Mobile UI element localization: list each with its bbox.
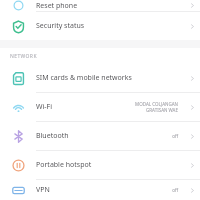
button[interactable]: Bluetooth — [0, 122, 200, 150]
staticText: MODAL COLJANGAN GRATISAN WAE — [135, 101, 178, 113]
staticText: off — [172, 133, 178, 139]
button[interactable]: Reset phone — [0, 0, 200, 11]
staticText: Wi-Fi — [36, 102, 53, 112]
button[interactable]: Wi-Fi — [0, 93, 200, 121]
button[interactable]: VPN — [0, 180, 200, 200]
staticText: off — [172, 187, 178, 193]
button[interactable]: Security status — [0, 12, 200, 40]
staticText: Portable hotspot — [36, 160, 92, 170]
button[interactable]: SIM cards & mobile networks — [0, 64, 200, 92]
staticText: Reset phone — [36, 1, 78, 11]
staticText: Security status — [36, 21, 85, 31]
staticText: SIM cards & mobile networks — [36, 73, 132, 83]
staticText: Bluetooth — [36, 131, 69, 141]
staticText: NETWORK — [10, 53, 37, 60]
staticText: VPN — [36, 185, 50, 195]
button[interactable]: Portable hotspot — [0, 151, 200, 179]
